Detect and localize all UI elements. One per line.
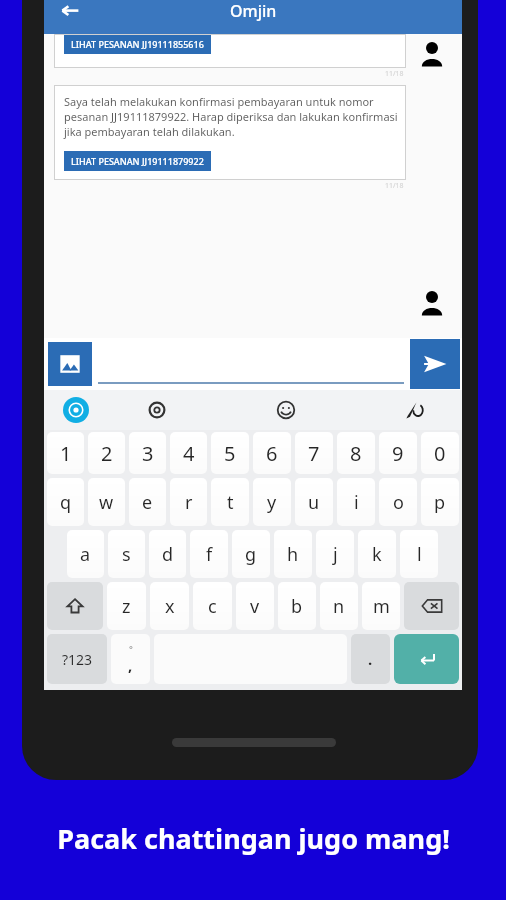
- button[interactable]: w: [88, 478, 125, 526]
- button[interactable]: r: [170, 478, 207, 526]
- button[interactable]: d: [149, 530, 186, 578]
- staticText: x: [165, 594, 175, 619]
- button[interactable]: l: [400, 530, 438, 578]
- button[interactable]: q: [47, 478, 84, 526]
- staticText: v: [250, 594, 260, 619]
- staticText: Omjin: [230, 0, 277, 22]
- button[interactable]: LIHAT PESANAN JJ19111855616: [64, 34, 211, 54]
- button[interactable]: Saya telah melakukan konfirmasi pembayar…: [54, 85, 406, 180]
- button[interactable]: y: [253, 478, 291, 526]
- button[interactable]: 8: [337, 432, 375, 474]
- staticText: h: [287, 542, 299, 567]
- button[interactable]: Attach image: [48, 342, 92, 386]
- button[interactable]: [98, 344, 404, 384]
- staticText: Saya telah melakukan konfirmasi pembayar…: [64, 94, 398, 139]
- button[interactable]: c: [193, 582, 232, 630]
- staticText: n: [333, 594, 345, 619]
- staticText: 4: [183, 440, 195, 467]
- staticText: ?123: [62, 650, 93, 669]
- staticText: 6: [266, 440, 278, 467]
- button[interactable]: °: [111, 634, 150, 684]
- button[interactable]: Back: [52, 0, 88, 34]
- button[interactable]: n: [320, 582, 358, 630]
- button[interactable]: LIHAT PESANAN JJ19111879922: [64, 151, 211, 171]
- staticText: Pacak chattingan jugo mang!: [57, 820, 450, 857]
- button[interactable]: 7: [295, 432, 333, 474]
- staticText: w: [99, 490, 114, 515]
- button[interactable]: b: [278, 582, 316, 630]
- staticText: c: [208, 594, 217, 619]
- button[interactable]: g: [232, 530, 270, 578]
- button[interactable]: Backspace: [404, 582, 459, 630]
- staticText: 7: [308, 440, 320, 467]
- staticText: 5: [224, 440, 236, 467]
- button[interactable]: p: [421, 478, 459, 526]
- staticText: 3: [142, 440, 154, 467]
- button[interactable]: Keyboard theme: [44, 390, 108, 430]
- button[interactable]: h: [274, 530, 312, 578]
- button[interactable]: z: [107, 582, 146, 630]
- button[interactable]: v: [236, 582, 274, 630]
- button[interactable]: ?123: [47, 634, 107, 684]
- staticText: LIHAT PESANAN JJ19111879922: [71, 155, 204, 167]
- staticText: e: [142, 490, 153, 515]
- button[interactable]: 5: [211, 432, 249, 474]
- staticText: s: [122, 542, 131, 567]
- button[interactable]: 4: [170, 432, 207, 474]
- button[interactable]: e: [129, 478, 166, 526]
- staticText: f: [206, 542, 213, 567]
- staticText: p: [434, 490, 446, 515]
- button[interactable]: 3: [129, 432, 166, 474]
- button[interactable]: .: [351, 634, 390, 684]
- button[interactable]: Emoji: [206, 390, 366, 430]
- staticText: 11/18: [385, 69, 404, 79]
- staticText: u: [308, 490, 320, 515]
- staticText: l: [417, 542, 422, 567]
- button[interactable]: Settings: [108, 390, 206, 430]
- button[interactable]: i: [337, 478, 375, 526]
- button[interactable]: s: [108, 530, 145, 578]
- button[interactable]: Shift: [47, 582, 103, 630]
- staticText: y: [267, 490, 277, 515]
- button[interactable]: m: [362, 582, 400, 630]
- button[interactable]: u: [295, 478, 333, 526]
- staticText: t: [227, 490, 234, 515]
- button[interactable]: 1: [47, 432, 84, 474]
- staticText: q: [60, 490, 72, 515]
- staticText: 1: [60, 440, 72, 467]
- button[interactable]: t: [211, 478, 249, 526]
- button[interactable]: o: [379, 478, 417, 526]
- button[interactable]: Send: [410, 339, 460, 389]
- staticText: o: [393, 490, 404, 515]
- button[interactable]: k: [358, 530, 396, 578]
- staticText: r: [185, 490, 193, 515]
- staticText: 11/18: [385, 181, 404, 191]
- button[interactable]: Handwriting: [366, 390, 462, 430]
- staticText: j: [333, 542, 338, 567]
- button[interactable]: f: [190, 530, 228, 578]
- staticText: m: [373, 594, 390, 619]
- staticText: g: [245, 542, 257, 567]
- staticText: k: [372, 542, 382, 567]
- staticText: i: [354, 490, 359, 515]
- staticText: z: [122, 594, 131, 619]
- staticText: .: [368, 649, 373, 669]
- staticText: ,: [128, 655, 133, 675]
- button[interactable]: 0: [421, 432, 459, 474]
- button[interactable]: LIHAT PESANAN JJ19111855616: [54, 34, 406, 68]
- button[interactable]: Enter: [394, 634, 459, 684]
- button[interactable]: 6: [253, 432, 291, 474]
- button[interactable]: a: [67, 530, 104, 578]
- staticText: d: [162, 542, 174, 567]
- button[interactable]: 2: [88, 432, 125, 474]
- button[interactable]: j: [316, 530, 354, 578]
- staticText: b: [291, 594, 303, 619]
- staticText: a: [80, 542, 91, 567]
- staticText: °: [129, 643, 133, 655]
- button[interactable]: x: [150, 582, 189, 630]
- staticText: 0: [434, 440, 446, 467]
- staticText: 2: [101, 440, 113, 467]
- staticText: 8: [350, 440, 362, 467]
- button[interactable]: 9: [379, 432, 417, 474]
